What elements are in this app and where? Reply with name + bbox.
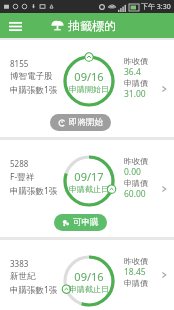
staticText: 可申購	[73, 217, 99, 228]
staticText: 申購截止日	[69, 284, 109, 294]
staticText: 申購張數1張	[10, 84, 58, 96]
staticText: 昨收價	[124, 156, 148, 166]
staticText: 0.00	[124, 166, 141, 178]
staticText: 申購開始日	[69, 84, 109, 94]
staticText: 09/17	[74, 169, 104, 184]
staticText: 抽籤標的	[68, 18, 116, 33]
staticText: 下午 3:30	[141, 2, 171, 12]
staticText: 09/16	[74, 269, 104, 284]
staticText: 31.00	[124, 88, 146, 100]
staticText: 36.4	[124, 66, 141, 78]
button[interactable]: 可申購	[54, 214, 107, 231]
staticText: 8155	[10, 58, 29, 69]
staticText: 60.00	[124, 188, 146, 200]
staticText: 3383	[10, 258, 29, 269]
staticText: 申購價	[124, 78, 148, 88]
staticText: 5288	[10, 158, 29, 169]
button[interactable]: 3383	[0, 240, 174, 310]
staticText: 申購截止日	[69, 184, 109, 194]
button[interactable]: Details	[157, 268, 171, 282]
staticText: 申購價	[124, 178, 148, 188]
staticText: 申購張數1張	[10, 284, 58, 296]
staticText: 昨收價	[124, 56, 148, 66]
button[interactable]: 即將開始	[50, 114, 111, 131]
staticText: 申購張數1張	[10, 185, 58, 197]
button[interactable]: 8155	[0, 40, 174, 137]
button[interactable]: Details	[157, 182, 171, 196]
staticText: 申購價	[124, 278, 148, 288]
staticText: 新世紀	[10, 271, 36, 282]
button[interactable]: 5288	[0, 140, 174, 237]
staticText: 即將開始	[69, 117, 103, 128]
staticText: 18.45	[124, 266, 146, 278]
staticText: 昨收價	[124, 256, 148, 266]
button[interactable]: Menu	[4, 15, 26, 37]
staticText: F-豐祥	[10, 171, 35, 183]
staticText: 博智電子股	[10, 71, 53, 82]
button[interactable]: Details	[157, 82, 171, 96]
staticText: 09/16	[74, 69, 104, 84]
